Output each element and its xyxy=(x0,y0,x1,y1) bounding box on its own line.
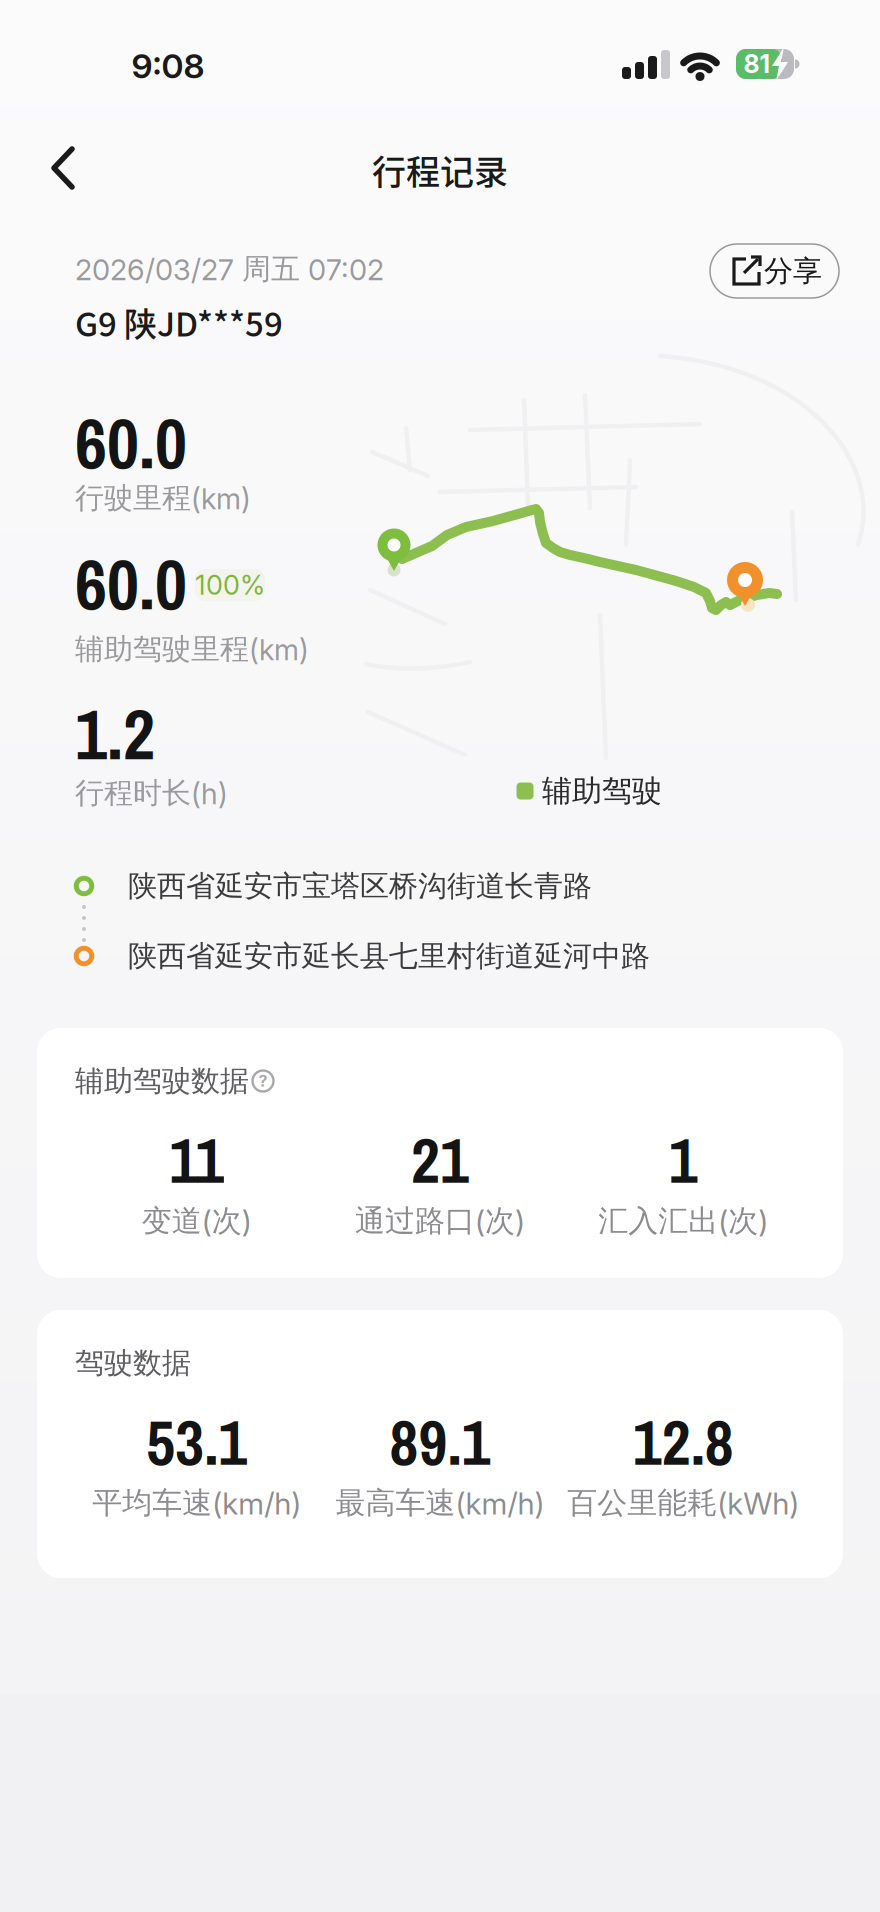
staticText: 9:08 xyxy=(131,45,204,86)
staticText: 60.0 xyxy=(75,537,187,631)
staticText: 百公里能耗(kWh) xyxy=(567,1484,799,1522)
staticText: ? xyxy=(258,1071,267,1091)
staticText: 辅助驾驶数据 xyxy=(75,1063,249,1099)
staticText: 陕西省延安市延长县七里村街道延河中路 xyxy=(128,938,650,974)
staticText: 1.2 xyxy=(75,687,155,781)
staticText: 辅助驾驶 xyxy=(542,772,662,810)
staticText: 行程记录 xyxy=(372,145,508,195)
staticText: G9 陕JD***59 xyxy=(75,298,283,346)
staticText: 通过路口(次) xyxy=(355,1202,525,1240)
staticText: 89.1 xyxy=(389,1400,490,1484)
staticText: 100% xyxy=(195,569,265,601)
staticText: 分享 xyxy=(764,253,822,289)
staticText: 行程时长(h) xyxy=(75,775,228,811)
staticText: 11 xyxy=(169,1118,224,1202)
staticText: 驾驶数据 xyxy=(75,1345,191,1381)
staticText: 53.1 xyxy=(146,1400,247,1484)
staticText: 60.0 xyxy=(75,396,187,490)
staticText: 平均车速(km/h) xyxy=(92,1484,301,1522)
staticText: 2026/03/27 周五 07:02 xyxy=(75,251,384,287)
staticText: 汇入汇出(次) xyxy=(598,1202,768,1240)
staticText: 1 xyxy=(669,1118,698,1202)
staticText: 陕西省延安市宝塔区桥沟街道长青路 xyxy=(128,868,592,904)
staticText: 21 xyxy=(411,1118,469,1202)
staticText: 81 xyxy=(743,49,770,79)
staticText: 行驶里程(km) xyxy=(75,480,251,516)
staticText: 12.8 xyxy=(633,1400,734,1484)
staticText: 最高车速(km/h) xyxy=(335,1484,544,1522)
staticText: 变道(次) xyxy=(142,1202,252,1240)
staticText: 辅助驾驶里程(km) xyxy=(75,631,309,667)
